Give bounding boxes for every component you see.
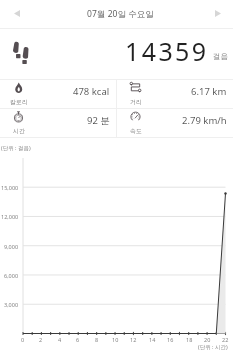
staticText: 거리 [130,98,142,106]
staticText: 3,000 [4,301,19,308]
staticText: 12 [130,336,137,343]
staticText: 걸음 [213,52,228,61]
staticText: 시간 [13,127,25,135]
button[interactable]: 거리 [117,80,233,108]
staticText: 9,000 [4,243,19,250]
button[interactable]: Previous day [4,3,29,24]
button[interactable]: 속도 [117,109,233,137]
staticText: 속도 [130,127,142,135]
staticText: 92 분 [87,114,110,126]
staticText: 2 [39,336,43,343]
staticText: 8 [95,336,99,343]
staticText: 15,000 [1,184,19,191]
button[interactable]: 14359 [0,29,233,79]
button[interactable]: 시간 [0,109,116,137]
staticText: 칼로리 [10,98,28,106]
staticText: 18 [186,336,193,343]
staticText: 22 [222,336,229,343]
button[interactable]: 칼로리 [0,80,116,108]
button[interactable]: Next day [205,3,230,24]
staticText: 0 [21,336,25,343]
staticText: 4 [58,336,62,343]
staticText: 20 [204,336,211,343]
staticText: 6.17 km [191,85,227,97]
staticText: 07월 20일 수요일 [87,8,154,20]
staticText: 6,000 [4,272,19,279]
staticText: 16 [167,336,174,343]
staticText: 14 [149,336,156,343]
staticText: 6 [76,336,80,343]
staticText: (단위 : 걸음) [1,144,31,152]
staticText: 12,000 [1,213,19,220]
staticText: 478 kcal [73,85,110,97]
staticText: 10 [112,336,119,343]
staticText: (단위 : 시간) [198,343,228,351]
staticText: 2.79 km/h [182,114,227,126]
staticText: 14359 [125,34,209,68]
